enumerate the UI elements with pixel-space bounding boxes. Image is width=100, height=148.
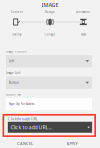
button[interactable]: Collage bbox=[33, 32, 67, 36]
staticText: Button bbox=[9, 81, 19, 84]
staticText: Sign Up for Access bbox=[9, 102, 34, 106]
button[interactable]: Button bbox=[6, 76, 92, 89]
button[interactable]: APPLY bbox=[57, 139, 87, 148]
staticText: Design bbox=[45, 10, 55, 14]
staticText: Overlay bbox=[12, 33, 21, 36]
staticText: Image Link bbox=[6, 71, 20, 75]
staticText: Stack bbox=[81, 33, 86, 36]
button[interactable]: Overlay bbox=[0, 32, 33, 36]
button[interactable]: Sign Up for Access bbox=[6, 98, 92, 110]
staticText: Button Text bbox=[6, 93, 21, 96]
staticText: Image Position bbox=[6, 50, 27, 53]
button[interactable]: Content bbox=[0, 10, 33, 14]
staticText: Collage bbox=[44, 33, 55, 36]
staticText: Left bbox=[9, 59, 14, 63]
button[interactable]: CANCEL bbox=[10, 139, 40, 148]
staticText: Content bbox=[11, 10, 23, 14]
staticText: Click to add URL... bbox=[10, 124, 51, 131]
staticText: IMAGE bbox=[41, 1, 58, 9]
button[interactable]: Stack bbox=[67, 32, 100, 36]
staticText: Animation bbox=[76, 10, 90, 14]
button[interactable]: Step bbox=[0, 18, 33, 25]
button[interactable]: Step bbox=[67, 18, 100, 25]
staticText: Clickthrough URL bbox=[8, 116, 38, 121]
button[interactable]: Left bbox=[6, 55, 92, 67]
button[interactable]: Animation bbox=[67, 10, 100, 14]
staticText: APPLY bbox=[66, 141, 77, 146]
staticText: CANCEL bbox=[17, 141, 33, 146]
button[interactable]: Design bbox=[33, 10, 67, 14]
button[interactable]: Step bbox=[33, 18, 67, 25]
